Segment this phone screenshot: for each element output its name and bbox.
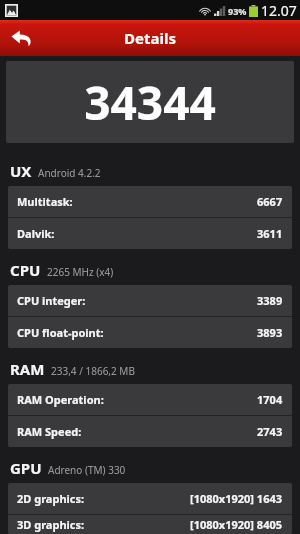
button[interactable]: 3D graphics: bbox=[8, 515, 292, 534]
staticText: 2265 MHz (x4) bbox=[47, 265, 114, 279]
staticText: Dalvik: bbox=[17, 226, 55, 241]
button[interactable]: Back bbox=[0, 20, 44, 56]
staticText: 233,4 / 1866,2 MB bbox=[51, 364, 135, 378]
staticText: CPU bbox=[10, 260, 41, 280]
staticText: Multitask: bbox=[17, 194, 73, 209]
staticText: 2743 bbox=[257, 424, 283, 439]
button[interactable]: Dalvik: bbox=[8, 218, 292, 249]
staticText: CPU integer: bbox=[17, 293, 86, 308]
staticText: CPU float-point: bbox=[17, 325, 104, 340]
button[interactable]: CPU integer: bbox=[8, 285, 292, 316]
staticText: 3611 bbox=[257, 226, 283, 241]
staticText: [1080x1920] 1643 bbox=[190, 491, 283, 506]
staticText: GPU bbox=[10, 458, 42, 478]
staticText: 12.07 bbox=[261, 1, 297, 20]
button[interactable]: CPU float-point: bbox=[8, 317, 292, 348]
staticText: RAM Speed: bbox=[17, 424, 82, 439]
staticText: 93% bbox=[228, 5, 247, 17]
staticText: 3389 bbox=[257, 293, 283, 308]
staticText: Android 4.2.2 bbox=[38, 166, 101, 180]
staticText: Adreno (TM) 330 bbox=[48, 463, 126, 477]
staticText: 2D graphics: bbox=[17, 491, 85, 506]
button[interactable]: RAM Speed: bbox=[8, 416, 292, 447]
button[interactable]: 34344 bbox=[6, 61, 294, 143]
button[interactable]: 2D graphics: bbox=[8, 483, 292, 514]
staticText: [1080x1920] 8405 bbox=[190, 517, 283, 532]
staticText: 6667 bbox=[257, 194, 283, 209]
staticText: UX bbox=[10, 161, 32, 181]
staticText: RAM bbox=[10, 359, 45, 379]
staticText: 3893 bbox=[257, 325, 283, 340]
staticText: 1704 bbox=[257, 392, 283, 407]
button[interactable]: RAM Operation: bbox=[8, 384, 292, 415]
staticText: 34344 bbox=[84, 71, 216, 134]
button[interactable]: Multitask: bbox=[8, 186, 292, 217]
staticText: RAM Operation: bbox=[17, 392, 104, 407]
staticText: Details bbox=[124, 28, 176, 48]
staticText: 3D graphics: bbox=[17, 517, 85, 532]
